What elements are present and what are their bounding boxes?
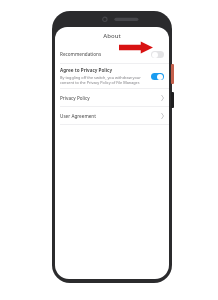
staticText: Privacy Policy	[60, 95, 90, 101]
other: Power button	[171, 64, 174, 84]
staticText: User Agreement	[60, 113, 97, 119]
button[interactable]: Privacy Policy	[55, 89, 169, 106]
staticText: Recommendations	[60, 51, 102, 57]
button[interactable]: Recommendations	[55, 45, 169, 63]
button[interactable]: User Agreement	[55, 107, 169, 124]
other: Volume button	[171, 92, 174, 108]
staticText: About	[103, 32, 121, 40]
button[interactable]: Switch off	[151, 51, 164, 58]
button[interactable]: Agree to Privacy Policy	[55, 64, 169, 88]
button[interactable]: Switch on	[151, 73, 164, 80]
staticText: By toggling off the switch, you withdraw…	[60, 75, 147, 85]
staticText: Agree to Privacy Policy	[60, 67, 113, 73]
